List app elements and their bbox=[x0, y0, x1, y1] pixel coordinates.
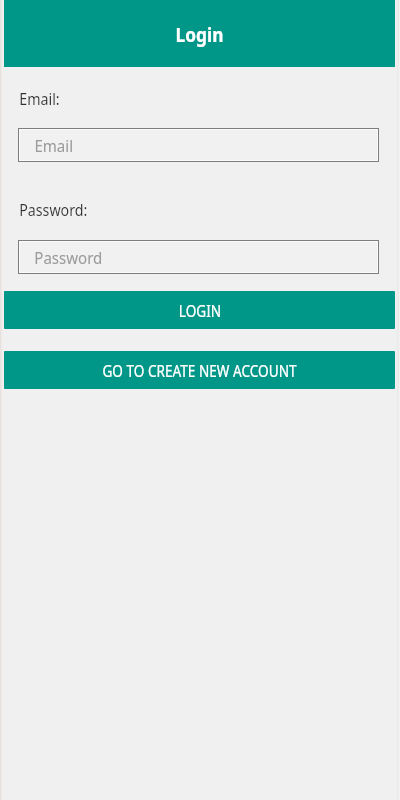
staticText: Email bbox=[34, 135, 73, 157]
staticText: Login bbox=[175, 22, 224, 48]
button[interactable]: LOGIN bbox=[4, 291, 395, 329]
staticText: LOGIN bbox=[179, 300, 221, 322]
button[interactable]: Email bbox=[18, 128, 379, 162]
button[interactable]: Password bbox=[18, 240, 379, 274]
staticText: Password: bbox=[19, 199, 87, 217]
staticText: Email: bbox=[19, 88, 60, 106]
staticText: Password bbox=[34, 247, 103, 269]
staticText: GO TO CREATE NEW ACCOUNT bbox=[102, 360, 297, 382]
button[interactable]: GO TO CREATE NEW ACCOUNT bbox=[4, 351, 395, 389]
